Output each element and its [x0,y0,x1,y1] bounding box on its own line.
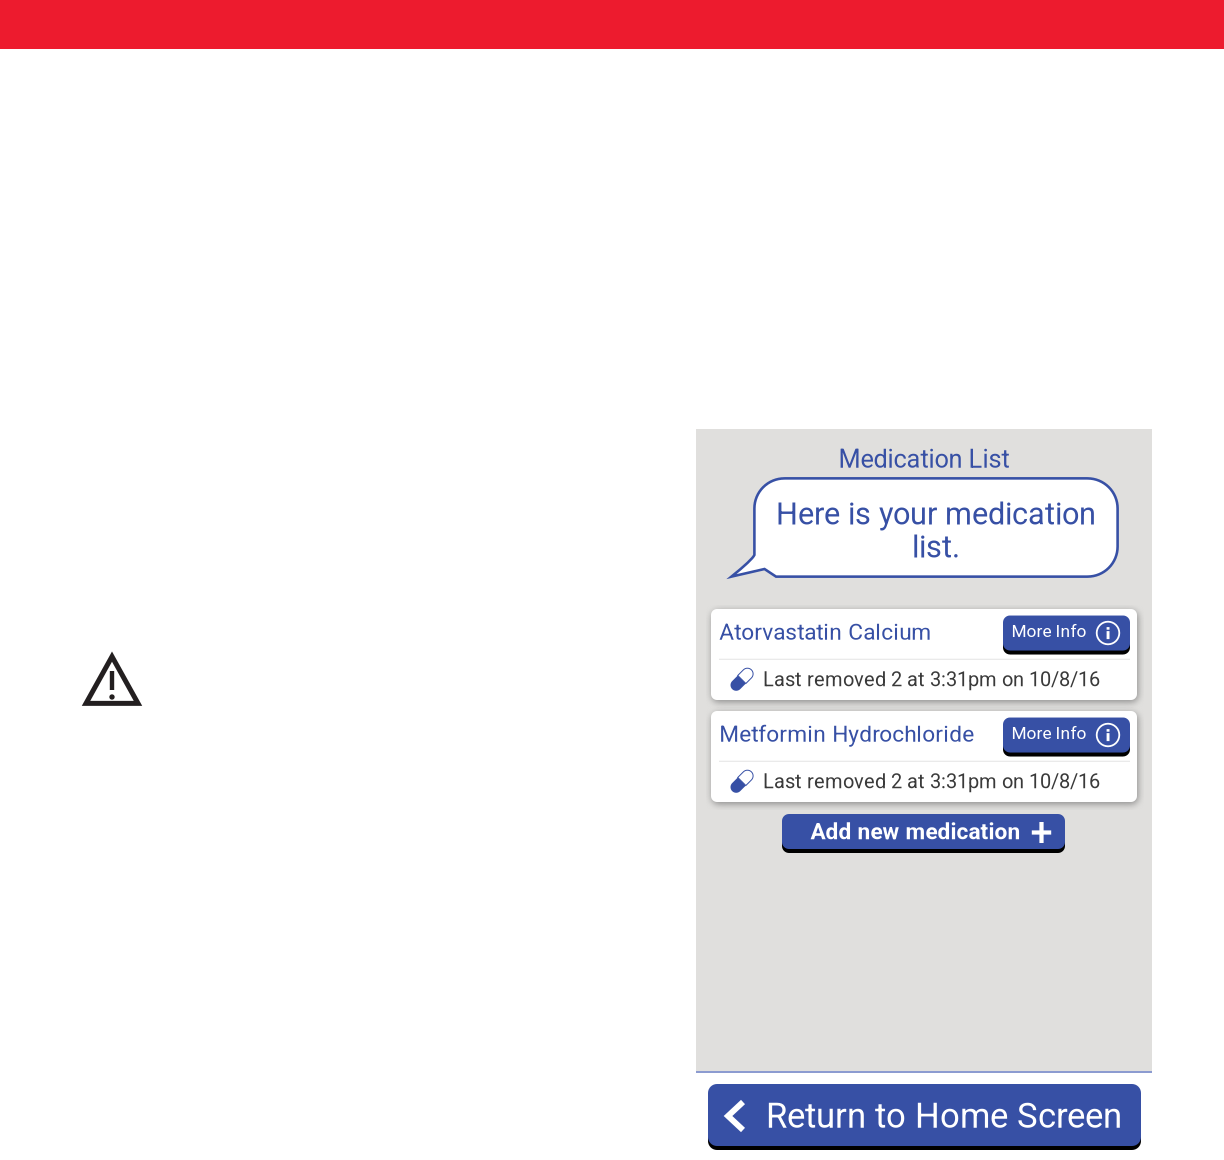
staticText: Metformin Hydrochloride [719,721,974,747]
staticText: Last removed 2 at 3:31pm on 10/8/16 [763,668,1100,691]
staticText: Return to Home Screen [766,1096,1122,1136]
button[interactable]: Return to Home Screen [708,1084,1141,1150]
staticText: More Info [1011,621,1086,641]
button[interactable]: More Info [1003,717,1130,756]
button[interactable]: More Info [1003,615,1130,654]
staticText: Here is your medication [776,496,1096,532]
staticText: Medication List [838,444,1009,474]
button[interactable]: Add new medication [782,814,1065,853]
staticText: Last removed 2 at 3:31pm on 10/8/16 [763,770,1100,793]
staticText: Add new medication [810,818,1020,845]
staticText: list. [912,529,960,565]
staticText: More Info [1011,723,1086,743]
staticText: Atorvastatin Calcium [719,619,931,645]
